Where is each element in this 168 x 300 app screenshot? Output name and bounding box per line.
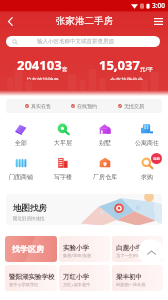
staticText: 万红+梁丰初中 — [63, 282, 91, 288]
button[interactable]: 急购 — [127, 157, 167, 181]
staticText: 总有效挂牌量 — [26, 77, 59, 80]
staticText: 真实在售 — [31, 103, 51, 109]
staticText: 初中小学双学区 — [9, 282, 39, 287]
staticText: 公寓商住 — [135, 139, 159, 147]
button[interactable]: 门面商铺 — [1, 157, 41, 181]
staticText: 附近好房快速找 — [13, 216, 45, 222]
staticText: 找学区房 — [12, 244, 44, 254]
staticText: 暨阳湖实验学校 — [9, 273, 55, 281]
button[interactable]: 写字楼 — [43, 157, 83, 181]
button[interactable]: 暨阳湖实验学校 — [5, 265, 57, 291]
staticText: 3:00 — [152, 1, 165, 10]
button[interactable]: Scroll to top — [138, 239, 164, 265]
staticText: 张家港二手房 — [56, 15, 113, 27]
staticText: 创苏南一流名校 — [116, 282, 146, 287]
button[interactable]: 204103 — [0, 56, 84, 80]
staticText: 为了一生的幸福 — [116, 253, 146, 258]
staticText: 15,037 — [99, 56, 140, 74]
button[interactable]: 全部 — [1, 123, 41, 147]
button[interactable]: 实验小学 — [59, 236, 110, 262]
button[interactable]: Menu — [148, 11, 168, 31]
staticText: 万红小学 — [63, 273, 89, 281]
staticText: 求购 — [141, 173, 153, 181]
button[interactable]: 15,037 — [84, 56, 168, 80]
staticText: 地图找房 — [13, 203, 47, 214]
staticText: 全市挂牌均价 — [110, 77, 143, 80]
staticText: 别墅 — [99, 139, 111, 147]
staticText: 大平层 — [54, 139, 72, 147]
button[interactable]: 在线预约 — [69, 103, 99, 109]
staticText: 套 — [62, 66, 68, 73]
button[interactable]: 别墅 — [85, 123, 125, 147]
button[interactable]: Back — [0, 11, 20, 31]
staticText: 204103 — [17, 56, 62, 74]
button[interactable]: 大平层 — [43, 123, 83, 147]
button[interactable]: 真实在售 — [23, 103, 53, 109]
button[interactable]: 梁丰初中 — [112, 265, 163, 291]
staticText: 实验小学 — [63, 244, 89, 252]
staticText: 元/平 — [140, 65, 154, 73]
staticText: 写字楼 — [54, 173, 72, 181]
button[interactable]: 白鹿小学 — [112, 236, 163, 262]
button[interactable]: 输入小区名称中文或首拼查房源 — [6, 36, 160, 47]
staticText: 全部 — [15, 139, 27, 147]
button[interactable]: 万红小学 — [59, 265, 110, 291]
button[interactable]: 无忧交易 — [116, 103, 146, 109]
staticText: 集校/龙潭/东校 — [63, 253, 92, 259]
staticText: 急购 — [153, 157, 160, 161]
staticText: 白鹿小学 — [116, 244, 142, 252]
staticText: 梁丰初中 — [116, 273, 142, 281]
staticText: 无忧交易 — [124, 103, 144, 109]
button[interactable]: 找学区房 — [5, 236, 57, 262]
button[interactable]: 地图找房 — [6, 194, 162, 225]
staticText: 输入小区名称中文或首拼查房源 — [37, 38, 114, 45]
staticText: 厂房仓库 — [93, 173, 117, 181]
staticText: 门面商铺 — [9, 173, 33, 181]
button[interactable]: 厂房仓库 — [85, 157, 125, 181]
button[interactable]: 公寓商住 — [127, 123, 167, 147]
staticText: 在线预约 — [77, 103, 97, 109]
